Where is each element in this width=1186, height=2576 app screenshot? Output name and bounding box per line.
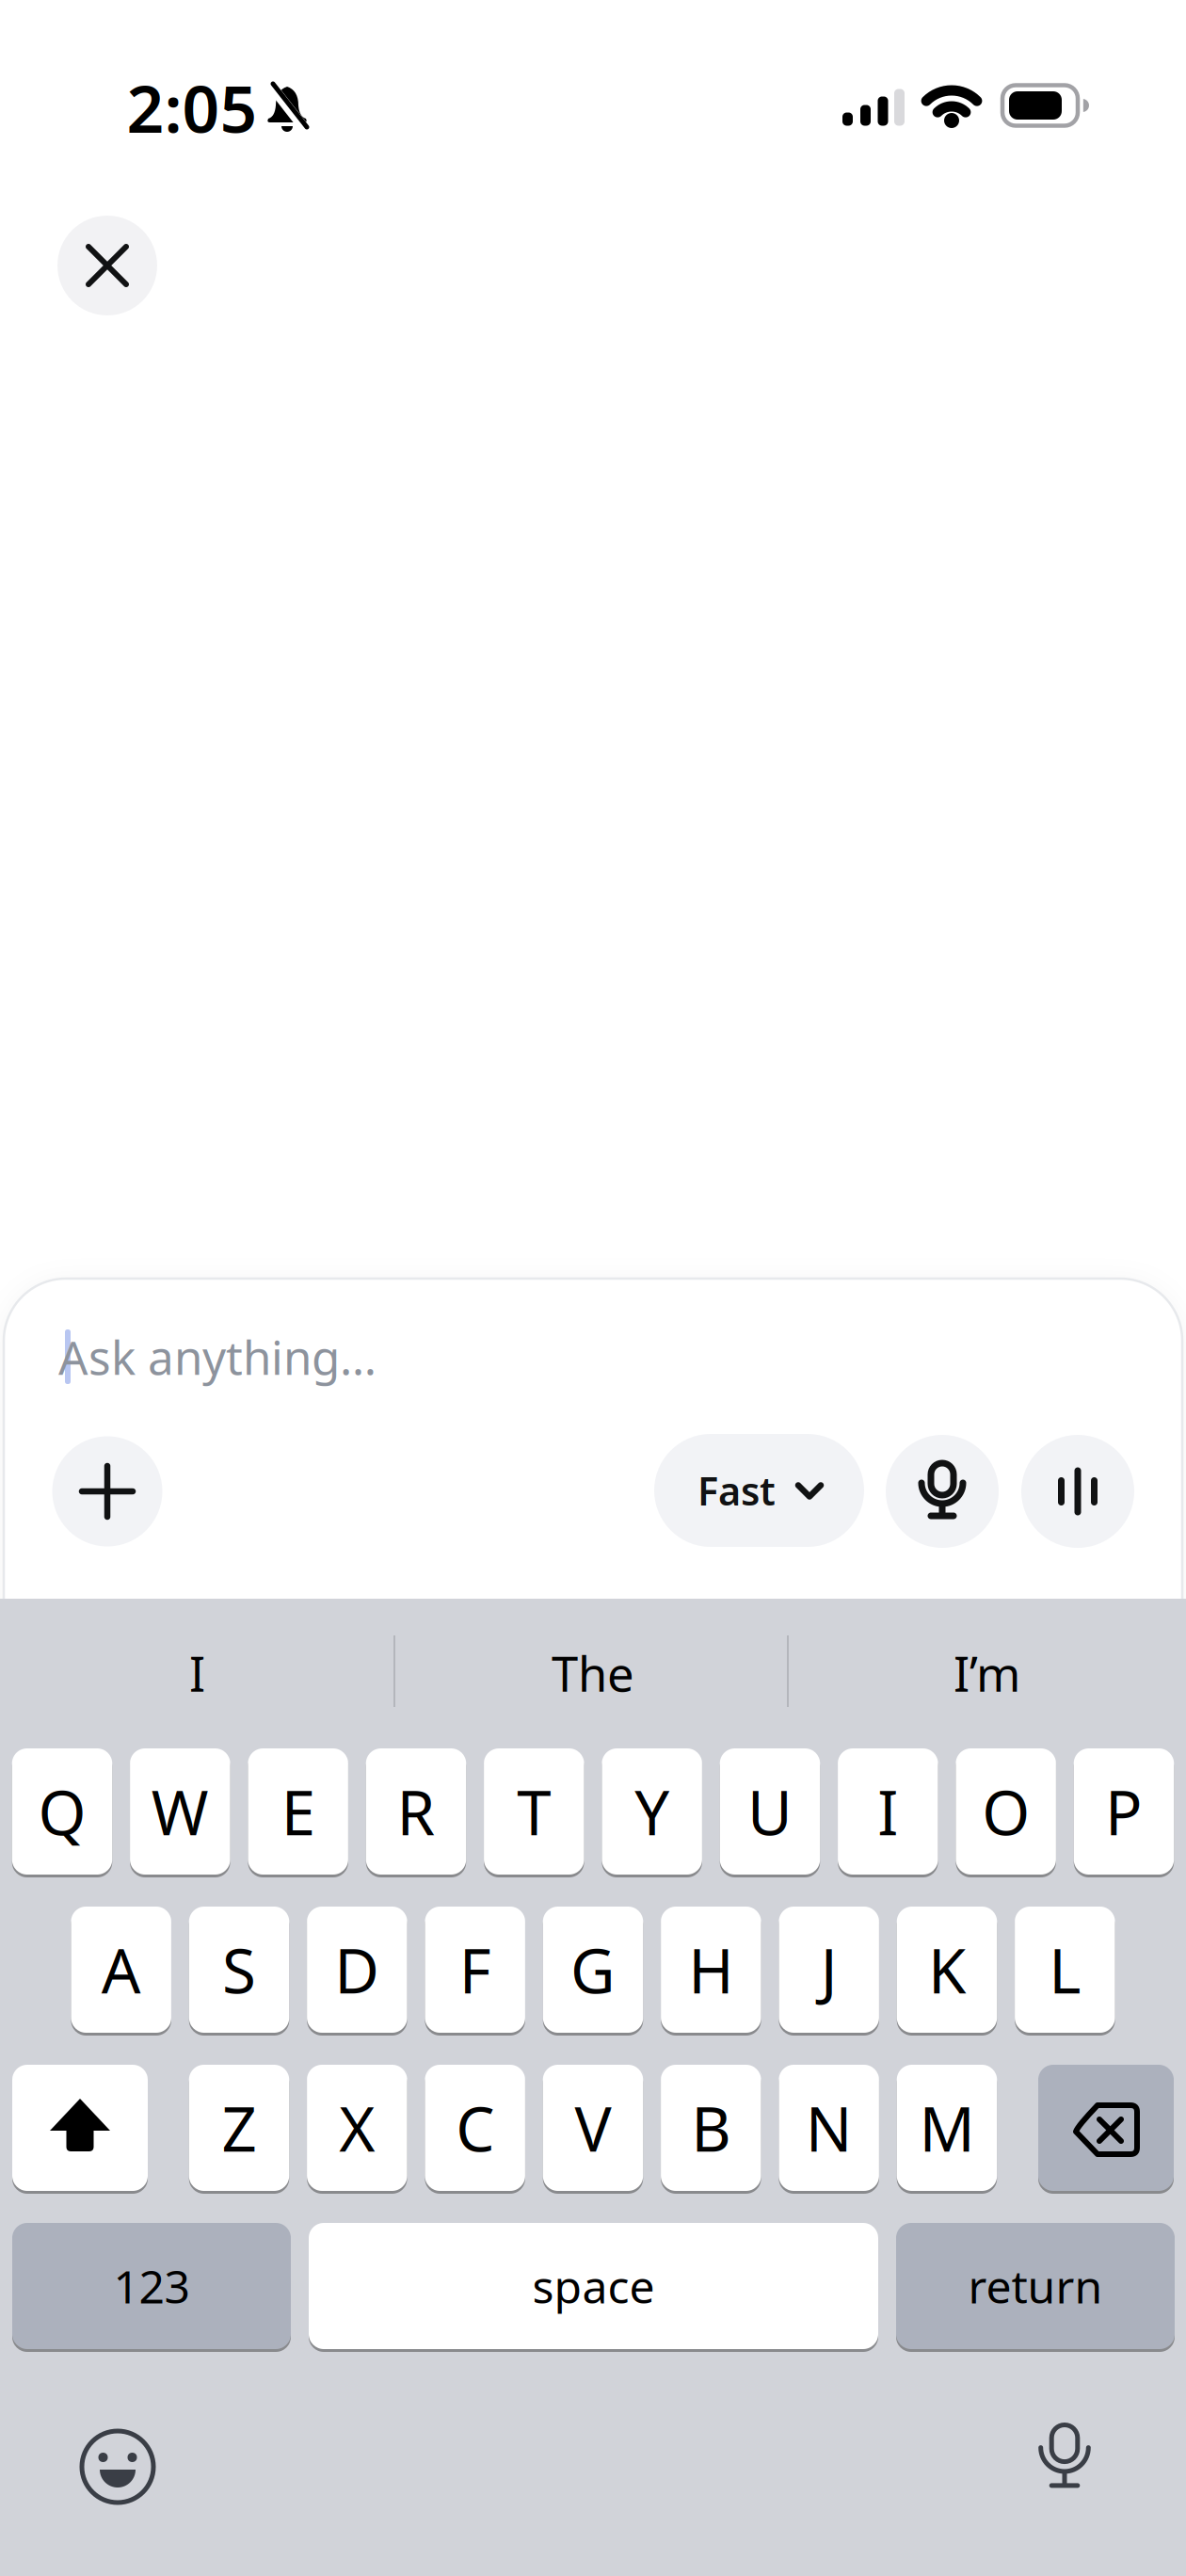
button[interactable]: I’m [808, 1617, 1166, 1730]
staticText: D [335, 1929, 380, 2011]
staticText: Ask anything… [58, 1326, 377, 1388]
staticText: R [397, 1771, 435, 1852]
button[interactable]: The [414, 1617, 772, 1730]
staticText: J [821, 1929, 837, 2011]
button[interactable]: T [484, 1748, 584, 1875]
staticText: Y [635, 1771, 669, 1852]
button[interactable]: Attach [52, 1436, 162, 1546]
staticText: S [222, 1929, 256, 2011]
staticText: Fast [697, 1465, 776, 1516]
button[interactable]: P [1074, 1748, 1174, 1875]
staticText: K [928, 1929, 966, 2011]
staticText: I [189, 1641, 205, 1705]
staticText: G [570, 1929, 616, 2011]
staticText: I’m [954, 1641, 1020, 1705]
staticText: H [688, 1929, 734, 2011]
button[interactable]: R [366, 1748, 466, 1875]
button[interactable]: M [897, 2065, 997, 2191]
button[interactable]: 123 [12, 2223, 291, 2349]
button[interactable]: U [720, 1748, 820, 1875]
staticText: U [747, 1771, 793, 1852]
button[interactable]: Close [57, 216, 157, 315]
staticText: V [575, 2087, 611, 2169]
button[interactable]: E [248, 1748, 348, 1875]
button[interactable]: L [1015, 1907, 1115, 2033]
button[interactable]: Voice mode [1021, 1435, 1134, 1548]
button[interactable]: return [896, 2223, 1175, 2349]
staticText: F [459, 1929, 491, 2011]
button[interactable]: Y [602, 1748, 702, 1875]
button[interactable]: C [425, 2065, 525, 2191]
staticText: O [982, 1771, 1030, 1852]
button[interactable]: Z [189, 2065, 289, 2191]
button[interactable]: Q [12, 1748, 112, 1875]
button[interactable]: Shift [12, 2065, 148, 2191]
staticText: E [281, 1771, 315, 1852]
button[interactable]: space [309, 2223, 878, 2349]
staticText: X [339, 2087, 375, 2169]
staticText: W [151, 1771, 209, 1852]
staticText: Z [222, 2087, 256, 2169]
staticText: Q [38, 1771, 86, 1852]
staticText: space [532, 2256, 655, 2316]
staticText: 2:05 [127, 64, 257, 151]
button[interactable]: Dictation [1022, 2415, 1107, 2500]
button[interactable]: I [18, 1617, 376, 1730]
staticText: return [968, 2256, 1103, 2316]
button[interactable]: K [897, 1907, 997, 2033]
staticText: L [1049, 1929, 1081, 2011]
staticText: M [919, 2087, 975, 2169]
button[interactable]: B [661, 2065, 761, 2191]
staticText: N [805, 2087, 852, 2169]
button[interactable]: N [779, 2065, 879, 2191]
staticText: I [878, 1771, 898, 1852]
staticText: B [691, 2087, 731, 2169]
button[interactable]: S [189, 1907, 289, 2033]
button[interactable]: Delete [1038, 2065, 1174, 2191]
button[interactable]: H [661, 1907, 761, 2033]
button[interactable]: O [956, 1748, 1056, 1875]
button[interactable]: J [779, 1907, 879, 2033]
button[interactable]: W [130, 1748, 230, 1875]
button[interactable]: I [838, 1748, 938, 1875]
button[interactable]: Dictate [886, 1435, 999, 1548]
button[interactable]: V [543, 2065, 643, 2191]
button[interactable]: Emoji [78, 2427, 157, 2506]
button[interactable]: D [307, 1907, 407, 2033]
staticText: T [517, 1771, 551, 1852]
staticText: P [1105, 1771, 1143, 1852]
button[interactable]: A [71, 1907, 171, 2033]
button[interactable]: Fast [654, 1434, 864, 1547]
staticText: 123 [113, 2256, 190, 2316]
button[interactable]: G [543, 1907, 643, 2033]
staticText: C [456, 2087, 494, 2169]
button[interactable]: X [307, 2065, 407, 2191]
staticText: The [552, 1641, 634, 1705]
button[interactable]: F [425, 1907, 525, 2033]
staticText: A [101, 1929, 141, 2011]
